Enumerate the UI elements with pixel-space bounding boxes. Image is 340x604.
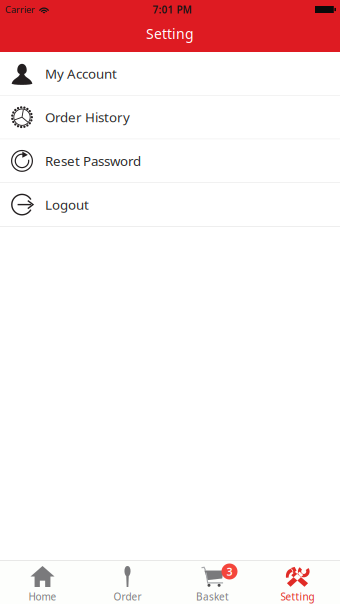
staticText: Setting: [280, 590, 314, 603]
button[interactable]: Setting: [255, 561, 340, 604]
staticText: Home: [28, 590, 56, 603]
button[interactable]: Reset Password: [0, 139, 340, 183]
staticText: My Account: [45, 65, 117, 82]
button[interactable]: Order History: [0, 96, 340, 139]
staticText: 3: [226, 564, 232, 579]
staticText: Carrier: [5, 3, 35, 16]
button[interactable]: Home: [0, 561, 85, 604]
staticText: Logout: [45, 196, 89, 213]
staticText: 7:01 PM: [152, 3, 191, 16]
button[interactable]: My Account: [0, 52, 340, 96]
staticText: Order: [113, 590, 141, 603]
staticText: Basket: [196, 590, 229, 603]
staticText: Reset Password: [45, 152, 141, 170]
button[interactable]: 3: [170, 561, 255, 604]
staticText: Setting: [146, 24, 194, 43]
button[interactable]: Order: [85, 561, 170, 604]
button[interactable]: Logout: [0, 183, 340, 227]
staticText: Order History: [45, 108, 130, 126]
